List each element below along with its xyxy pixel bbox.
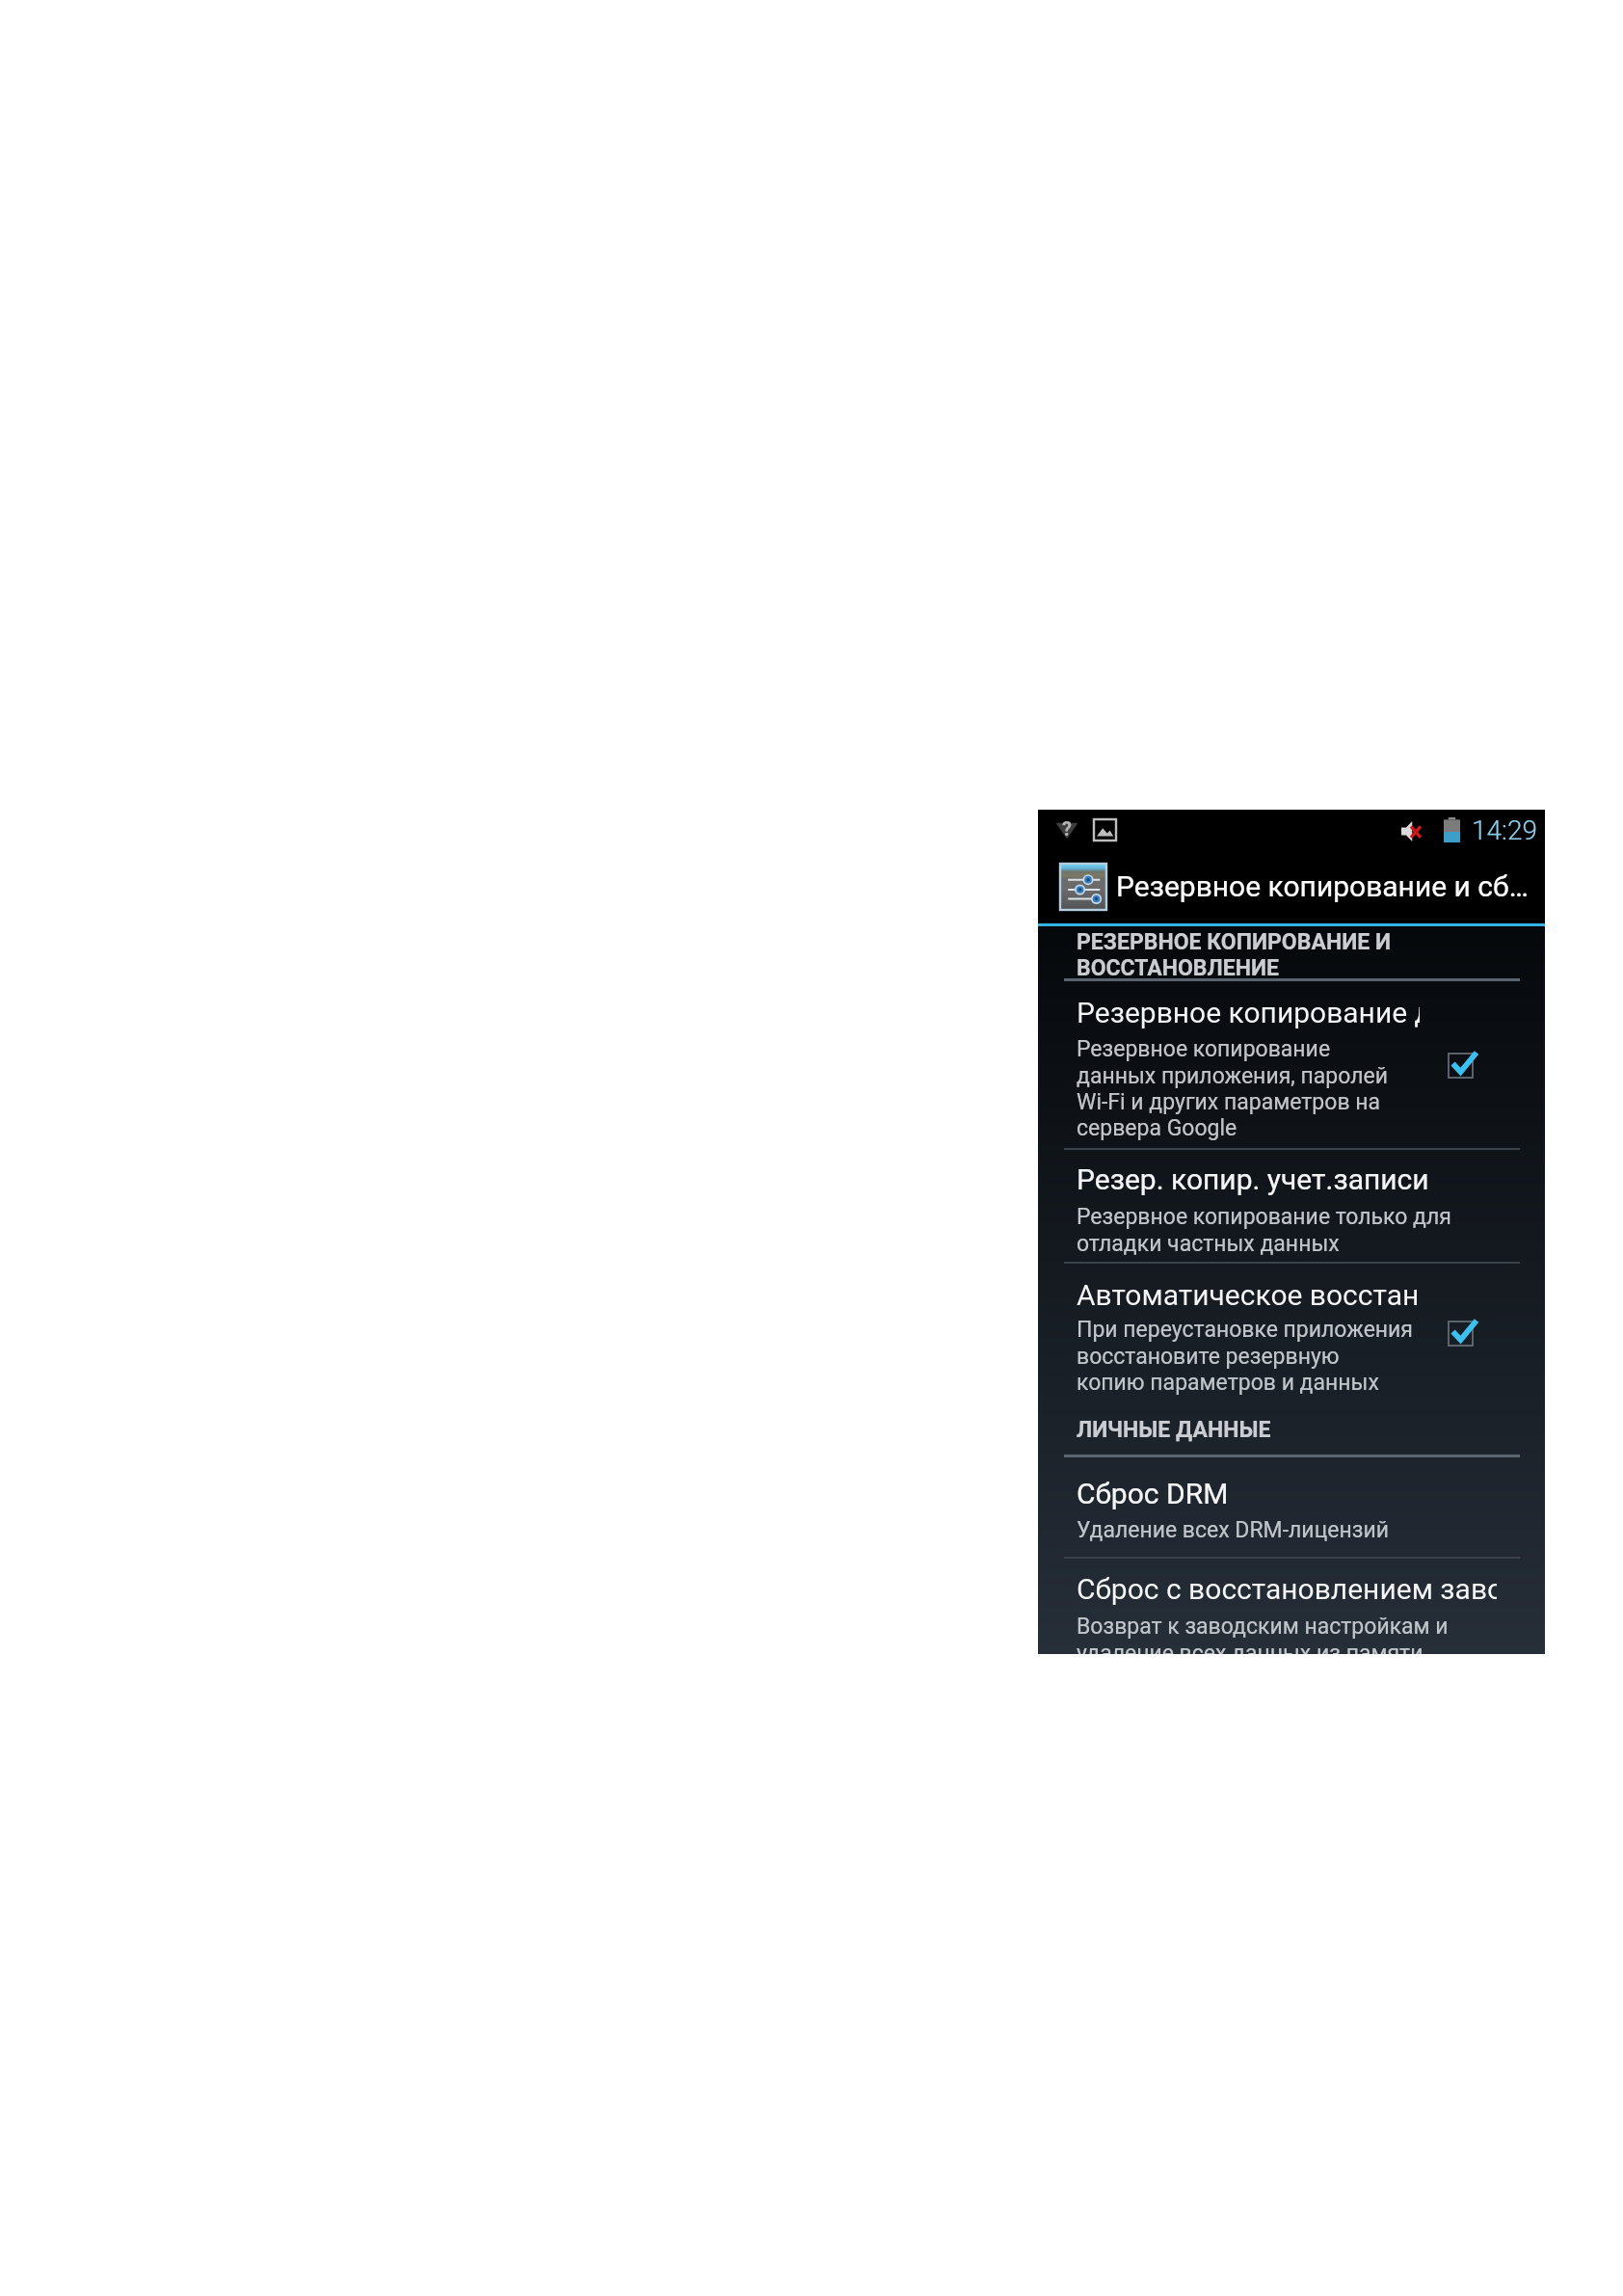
staticText: Автоматическое восстановление [1077, 1278, 1417, 1312]
staticText: Сброс DRM [1077, 1477, 1229, 1510]
button[interactable]: Резервное копирование и сб… [1038, 849, 1545, 923]
staticText: При переустановке приложения восстановит… [1077, 1317, 1413, 1395]
staticText: 14:29 [1472, 814, 1538, 846]
staticText: ? [1062, 817, 1072, 839]
button[interactable]: Toggle setting [1448, 1053, 1488, 1093]
staticText: Резервное копирование данных [1077, 996, 1420, 1029]
staticText: Резер. копир. учет.записи [1077, 1162, 1429, 1196]
button[interactable]: Резер. копир. учет.записи [1038, 1152, 1545, 1262]
staticText: Возврат к заводским настройкам и удалени… [1077, 1614, 1449, 1654]
button[interactable]: Резервное копирование данных [1038, 982, 1545, 1148]
button[interactable]: Toggle setting [1448, 1321, 1488, 1361]
staticText: Удаление всех DRM-лицензий [1077, 1517, 1389, 1543]
staticText: ЛИЧНЫЕ ДАННЫЕ [1077, 1417, 1271, 1443]
staticText: Резервное копирование данных приложения,… [1077, 1036, 1388, 1140]
staticText: РЕЗЕРВНОЕ КОПИРОВАНИЕ И ВОССТАНОВЛЕНИЕ [1077, 929, 1392, 981]
staticText: Резервное копирование и сб… [1116, 869, 1529, 903]
button[interactable]: Сброс с восстановлением заводских [1038, 1561, 1545, 1654]
staticText: Резервное копирование только для отладки… [1077, 1204, 1451, 1256]
staticText: Сброс с восстановлением заводских [1077, 1572, 1497, 1606]
button[interactable]: Автоматическое восстановление [1038, 1266, 1545, 1412]
button[interactable]: Сброс DRM [1038, 1458, 1545, 1557]
